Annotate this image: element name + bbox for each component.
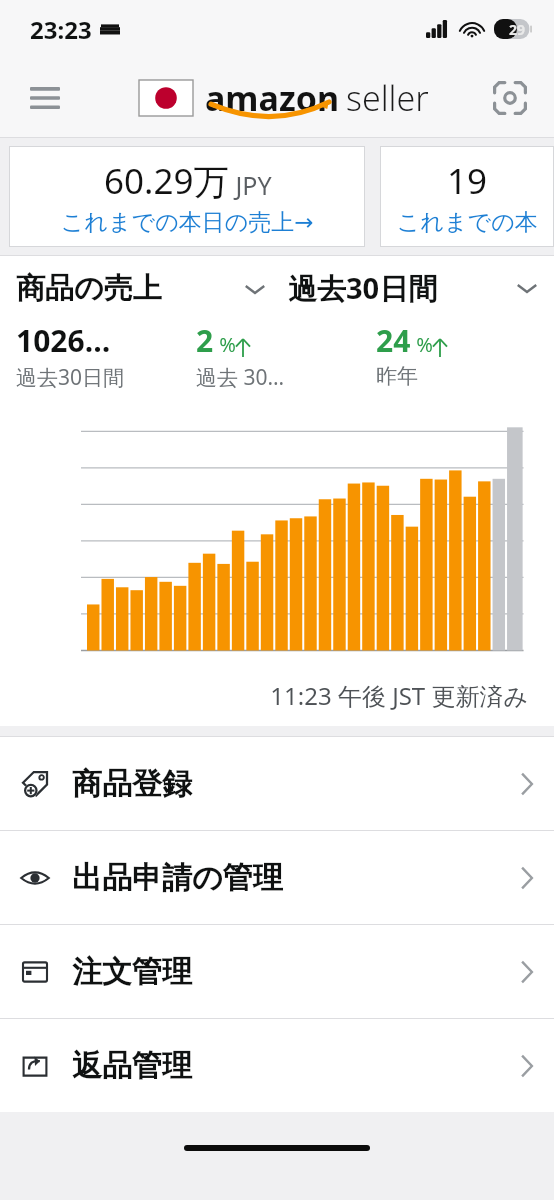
button[interactable]: Scan <box>486 74 534 122</box>
button[interactable]: 返品管理 <box>0 1019 554 1112</box>
button[interactable]: 商品登録 <box>0 737 554 830</box>
staticText: JPY <box>229 168 272 202</box>
staticText: 商品登録 <box>72 765 192 803</box>
staticText: 29 <box>509 20 526 39</box>
button[interactable]: 60.29万 <box>9 146 365 247</box>
staticText: amazon <box>205 75 339 121</box>
button[interactable]: 出品申請の管理 <box>0 831 554 924</box>
button[interactable]: 注文管理 <box>0 925 554 1018</box>
staticText: 24 <box>376 320 411 361</box>
button[interactable]: Menu <box>22 75 68 121</box>
staticText: 商品の売上 <box>16 270 162 307</box>
staticText: 過去 30… <box>196 363 285 392</box>
staticText: 過去30日間 <box>16 363 125 392</box>
staticText: 返品管理 <box>72 1047 192 1085</box>
staticText: 19 <box>447 157 488 205</box>
staticText: 11:23 午後 JST 更新済み <box>0 679 528 712</box>
staticText: 2 <box>196 320 214 361</box>
staticText: これまでの本日の売上→ <box>61 208 314 237</box>
staticText: 注文管理 <box>72 953 192 991</box>
staticText: 過去30日間 <box>288 268 438 308</box>
staticText: 60.29万 <box>104 157 229 205</box>
staticText: seller <box>346 75 429 121</box>
staticText: % <box>214 331 236 358</box>
button[interactable]: 商品の売上 <box>16 270 266 307</box>
button[interactable]: 過去30日間 <box>288 268 538 308</box>
staticText: % <box>411 331 433 358</box>
staticText: 昨年 <box>376 363 418 389</box>
staticText: これまでの本 <box>397 208 538 237</box>
staticText: 出品申請の管理 <box>72 859 283 897</box>
button[interactable]: 19 <box>380 146 554 247</box>
staticText: 23:23 <box>30 13 92 46</box>
staticText: 1026… <box>16 320 111 361</box>
